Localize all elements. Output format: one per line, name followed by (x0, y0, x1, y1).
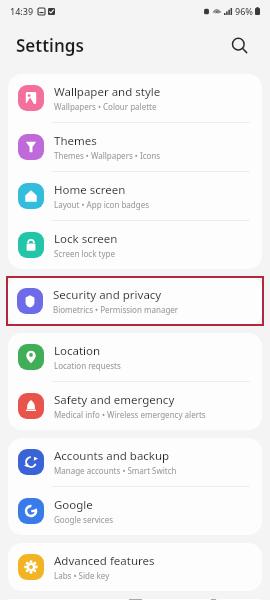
button[interactable]: Security and privacy (7, 277, 263, 325)
staticText: Advanced features (54, 553, 155, 569)
staticText: Google (54, 497, 93, 513)
staticText: Accounts and backup (54, 448, 170, 464)
staticText: Screen lock type (54, 248, 115, 259)
staticText: Biometrics • Permission manager (53, 304, 179, 315)
button[interactable]: Themes (8, 123, 262, 171)
button[interactable] (8, 599, 262, 600)
staticText: Themes • Wallpapers • Icons (54, 150, 161, 161)
button[interactable]: Wallpaper and style (8, 74, 262, 122)
staticText: Home screen (54, 182, 126, 198)
staticText: Layout • App icon badges (54, 199, 149, 210)
button[interactable]: Security and privacy (7, 277, 263, 325)
staticText: Medical info • Wireless emergency alerts (54, 409, 206, 420)
button[interactable]: Accounts and backup (8, 438, 262, 486)
staticText: Settings (16, 34, 84, 57)
button[interactable]: Home screen (8, 172, 262, 220)
staticText: Location (54, 343, 101, 359)
button[interactable]: Location (8, 333, 262, 381)
staticText: Google services (54, 514, 114, 525)
button[interactable]: Lock screen (8, 221, 262, 269)
button[interactable]: Safety and emergency (8, 382, 262, 430)
button[interactable]: Advanced features (8, 543, 262, 591)
staticText: Lock screen (54, 231, 118, 247)
staticText: Manage accounts • Smart Switch (54, 465, 177, 476)
staticText: Wallpapers • Colour palette (54, 101, 157, 112)
staticText: Safety and emergency (54, 392, 175, 408)
staticText: Security and privacy (53, 287, 162, 303)
button[interactable]: Search (224, 30, 254, 60)
staticText: 14:39 (10, 5, 34, 17)
button[interactable]: Google (8, 487, 262, 535)
staticText: 96% (235, 5, 253, 17)
staticText: Location requests (54, 360, 121, 371)
staticText: Themes (54, 133, 97, 149)
staticText: Labs • Side key (54, 570, 110, 581)
staticText: Wallpaper and style (54, 84, 161, 100)
